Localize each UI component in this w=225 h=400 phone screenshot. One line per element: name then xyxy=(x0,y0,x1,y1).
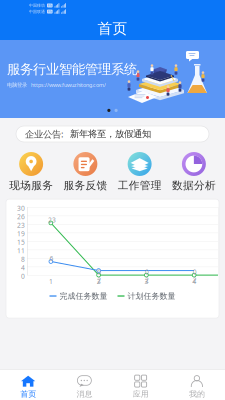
staticText: https://www.fuwuzhitong.com/ xyxy=(31,81,106,88)
staticText: 4G xyxy=(48,10,52,13)
staticText: 中国联通 xyxy=(29,9,45,14)
button[interactable]: 服务反馈 xyxy=(58,152,112,192)
staticText: 我的 xyxy=(189,389,205,399)
button[interactable]: 我的 xyxy=(169,367,225,400)
staticText: 11 xyxy=(17,246,25,255)
staticText: 4 xyxy=(21,263,25,272)
button[interactable]: 消息 xyxy=(56,367,112,400)
staticText: 现场服务 xyxy=(9,179,53,192)
staticText: 计划任务数量 xyxy=(127,291,175,301)
staticText: 电脑登录 xyxy=(7,82,27,88)
staticText: 4 xyxy=(192,277,196,286)
staticText: 2 xyxy=(97,277,101,286)
staticText: 0 xyxy=(21,272,25,281)
staticText: 3 xyxy=(144,277,148,286)
staticText: 0 xyxy=(97,268,101,276)
button[interactable]: 数据分析 xyxy=(167,152,221,192)
button[interactable]: 工作管理 xyxy=(112,152,167,192)
staticText: 4G xyxy=(48,4,52,7)
staticText: 应用 xyxy=(133,389,149,399)
staticText: 0 xyxy=(145,268,149,276)
staticText: 服务行业智能管理系统 xyxy=(7,61,137,77)
staticText: 8 xyxy=(21,255,25,264)
staticText: 1 xyxy=(49,277,53,286)
staticText: 首页 xyxy=(20,389,36,399)
staticText: 首页 xyxy=(97,19,127,37)
staticText: 23 xyxy=(48,215,56,224)
staticText: 中国移动 xyxy=(29,3,45,8)
staticText: 23 xyxy=(17,221,25,230)
button[interactable]: 首页 xyxy=(0,367,56,400)
staticText: 工作管理 xyxy=(118,179,162,192)
staticText: 2 xyxy=(193,276,197,284)
staticText: 消息 xyxy=(76,389,92,399)
staticText: 15 xyxy=(17,238,25,247)
staticText: 数据分析 xyxy=(172,179,216,192)
staticText: 19 xyxy=(17,229,25,238)
staticText: 企业公告: xyxy=(25,128,64,140)
staticText: 26 xyxy=(17,212,25,221)
button[interactable]: 应用 xyxy=(112,367,169,400)
staticText: 0 xyxy=(193,268,197,276)
staticText: 30 xyxy=(17,204,25,213)
staticText: 服务反馈 xyxy=(63,179,107,192)
button[interactable]: 现场服务 xyxy=(4,152,58,192)
staticText: 2 xyxy=(145,276,149,284)
staticText: 新年将至，放假通知 xyxy=(70,128,151,140)
staticText: 完成任务数量 xyxy=(59,291,107,301)
staticText: 2 xyxy=(97,276,101,284)
staticText: 6 xyxy=(49,254,53,263)
